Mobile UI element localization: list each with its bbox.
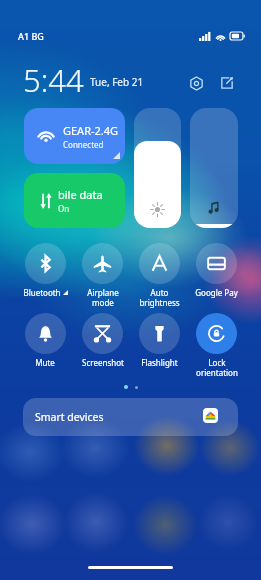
staticText: Connected bbox=[63, 139, 104, 150]
button[interactable]: Edit bbox=[215, 71, 239, 95]
staticText: GEAR-2.4G bbox=[63, 123, 119, 138]
staticText: Flashlight bbox=[141, 357, 178, 368]
button[interactable]: bile data bbox=[24, 173, 125, 228]
staticText: Lock orientation bbox=[196, 357, 238, 378]
button[interactable]: Airplane mode bbox=[74, 243, 131, 308]
staticText: Airplane mode bbox=[87, 287, 119, 308]
button[interactable]: Smart devices bbox=[23, 398, 238, 436]
button[interactable]: Mute bbox=[16, 313, 74, 368]
button[interactable]: Flashlight bbox=[131, 313, 188, 368]
button[interactable]: Lock orientation bbox=[188, 313, 245, 378]
staticText: On bbox=[58, 203, 70, 214]
button[interactable]: Screenshot bbox=[74, 313, 131, 368]
button[interactable]: Brightness bbox=[134, 108, 181, 228]
staticText: A1 BG bbox=[18, 30, 44, 42]
button[interactable]: GEAR-2.4G bbox=[24, 108, 125, 164]
staticText: Smart devices bbox=[35, 410, 104, 424]
staticText: Tue, Feb 21 bbox=[90, 75, 144, 89]
staticText: Mute bbox=[35, 357, 55, 368]
staticText: Auto brightness bbox=[139, 287, 180, 308]
button[interactable]: Google Pay bbox=[188, 243, 245, 298]
staticText: bile data bbox=[58, 187, 103, 202]
button[interactable]: Bluetooth bbox=[16, 243, 74, 298]
button[interactable]: Auto brightness bbox=[131, 243, 188, 308]
staticText: Google Pay bbox=[195, 287, 238, 298]
staticText: 5:44 bbox=[23, 59, 84, 93]
staticText: Bluetooth bbox=[23, 287, 61, 298]
staticText: Screenshot bbox=[82, 357, 124, 368]
button[interactable]: Settings bbox=[184, 71, 208, 95]
button[interactable]: Volume bbox=[190, 108, 238, 228]
